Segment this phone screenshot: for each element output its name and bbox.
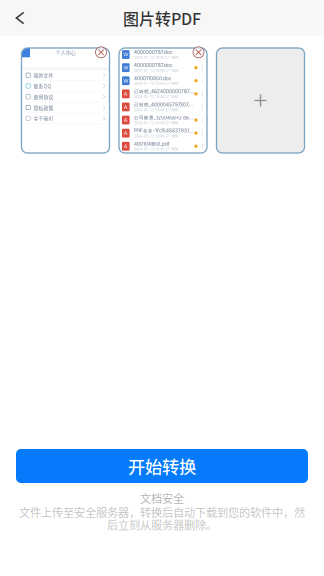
staticText: W (123, 64, 128, 71)
staticText: 已转档_4624000000787.pdf (134, 89, 194, 94)
button[interactable]: 返回 (0, 0, 40, 36)
staticText: PDF合并-1fc154563793112.pdf (134, 128, 194, 134)
staticText: 联系QQ (34, 82, 52, 89)
staticText: 2024-01-12 10:45:27 186K (134, 55, 179, 59)
staticText: 2024-01-12 10:45:27 186K (134, 94, 179, 99)
staticText: 4000000787.doc (134, 63, 173, 68)
staticText: 2024-01-12 10:45:27 186K (134, 147, 179, 151)
staticText: W (123, 51, 128, 58)
staticText: 文件上传至安全服务器，转换后自动下载到您的软件中，然 (19, 504, 305, 520)
staticText: A (124, 117, 128, 123)
staticText: 公司账票_1250456*2 d62a 43d… (134, 115, 194, 121)
staticText: 4000110950.doc (134, 76, 172, 81)
staticText: 图片转PDF (123, 6, 201, 30)
staticText: 个人中心 (55, 49, 75, 57)
staticText: 开始转换 (128, 453, 196, 479)
staticText: W (123, 77, 128, 84)
staticText: 400104测试.pdf (134, 141, 170, 147)
staticText: 2024-01-12 10:45:27 186K (134, 121, 179, 125)
staticText: A (124, 91, 128, 97)
button[interactable]: 图片 1 (21, 48, 109, 153)
staticText: 已转档_4000045797307.pdf (134, 102, 194, 107)
staticText: 2024-01-12 10:45:27 186K (134, 108, 179, 112)
staticText: 2024-01-12 10:45:27 186K (134, 134, 179, 138)
staticText: 关于我们 (34, 115, 54, 122)
staticText: A (124, 104, 128, 110)
button[interactable]: 添加图片 (216, 48, 304, 153)
staticText: 4000000787.doc (134, 49, 173, 55)
staticText: 隐私政策 (34, 104, 54, 111)
staticText: 2024-01-12 10:45:27 186K (134, 81, 179, 86)
staticText: 2024-01-12 10:45:27 186K (134, 68, 179, 73)
staticText: 我的文件 (34, 72, 54, 79)
staticText: 后立刻从服务器删除。 (107, 516, 217, 533)
staticText: A (124, 130, 128, 136)
button[interactable]: 开始转换 (16, 449, 308, 483)
button[interactable]: 图片 2 (119, 48, 207, 153)
staticText: 文档安全 (140, 490, 184, 506)
staticText: 使用协议 (34, 93, 54, 100)
staticText: A (124, 143, 128, 149)
